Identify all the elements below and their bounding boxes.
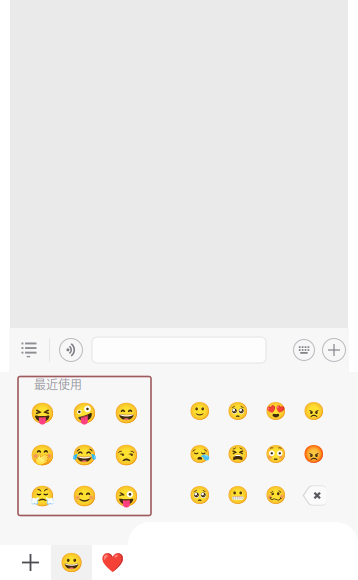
staticText: 😳 [265, 444, 287, 464]
staticText: 😄 [114, 402, 139, 425]
button[interactable]: Emoji [181, 389, 219, 432]
staticText: 😤 [30, 485, 55, 508]
staticText: 😒 [114, 444, 139, 467]
button[interactable]: Emoji [21, 434, 63, 476]
staticText: 🤪 [72, 402, 97, 425]
button[interactable]: Emoji [63, 434, 105, 476]
button[interactable]: Smileys [51, 545, 92, 580]
staticText: 😊 [72, 485, 97, 508]
button[interactable]: Emoji [295, 389, 333, 432]
button[interactable]: Emoji [21, 392, 63, 434]
staticText: 😜 [114, 485, 139, 508]
button[interactable]: Emoji [219, 389, 257, 432]
staticText: 😂 [72, 444, 97, 467]
staticText: 😡 [303, 444, 325, 464]
button[interactable]: More [319, 335, 349, 365]
button[interactable]: Emoji [105, 434, 147, 476]
button[interactable]: Emoji [257, 475, 295, 515]
staticText: 😝 [30, 402, 55, 425]
button[interactable]: Voice input [50, 329, 92, 371]
button[interactable]: Emoji categories [9, 328, 49, 372]
staticText: 🥴 [265, 485, 287, 506]
button[interactable]: Emoji [219, 475, 257, 515]
button[interactable]: Keyboard [289, 335, 319, 365]
button[interactable]: Emoji [21, 476, 63, 516]
staticText: 🤭 [30, 444, 55, 467]
staticText: 😫 [227, 444, 249, 464]
staticText: 😠 [303, 401, 325, 421]
button[interactable]: Emoji [63, 392, 105, 434]
staticText: 😀 [60, 552, 83, 573]
staticText: 最近使用 [34, 375, 82, 393]
button[interactable]: Favourites [92, 545, 133, 580]
button[interactable]: Emoji [63, 476, 105, 516]
staticText: 🥺 [227, 401, 249, 421]
button[interactable]: Emoji [295, 432, 333, 475]
staticText: 😬 [227, 485, 249, 506]
button[interactable]: Emoji [105, 392, 147, 434]
button[interactable]: Add stickers [10, 545, 51, 580]
button[interactable]: Emoji [181, 432, 219, 475]
staticText: 😪 [189, 444, 211, 464]
staticText: 🙂 [189, 401, 211, 421]
button[interactable]: Delete [295, 475, 333, 515]
staticText: ❤️ [101, 552, 124, 573]
staticText: 🥺 [189, 485, 211, 506]
button[interactable]: Emoji [105, 476, 147, 516]
button[interactable]: Emoji [257, 432, 295, 475]
button[interactable]: Emoji [219, 432, 257, 475]
staticText: 😍 [265, 401, 287, 421]
button[interactable]: Emoji [257, 389, 295, 432]
button[interactable]: Emoji [181, 475, 219, 515]
